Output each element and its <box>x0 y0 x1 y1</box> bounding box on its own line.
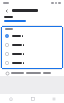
button[interactable]: Back <box>3 7 10 14</box>
button[interactable] <box>4 20 26 22</box>
button[interactable]: Home <box>0 94 22 103</box>
button[interactable] <box>1 40 63 49</box>
button[interactable]: Apps <box>22 94 43 103</box>
button[interactable] <box>0 70 64 76</box>
button[interactable] <box>1 31 63 40</box>
button[interactable]: Menu <box>43 94 64 103</box>
button[interactable] <box>1 58 63 67</box>
button[interactable] <box>1 49 63 58</box>
